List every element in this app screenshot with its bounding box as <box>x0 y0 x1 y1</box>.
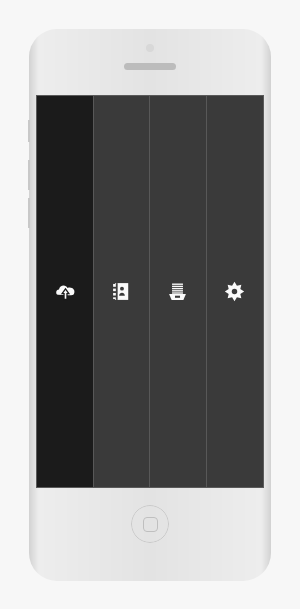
button[interactable]: Contacts <box>93 96 149 487</box>
button[interactable]: Home <box>131 505 169 543</box>
button[interactable]: Settings <box>206 96 263 487</box>
staticText: 16:45 <box>140 98 161 109</box>
button[interactable]: Upload <box>37 96 93 487</box>
staticText: Upload <box>48 122 95 140</box>
button[interactable]: Inbox <box>149 96 206 487</box>
